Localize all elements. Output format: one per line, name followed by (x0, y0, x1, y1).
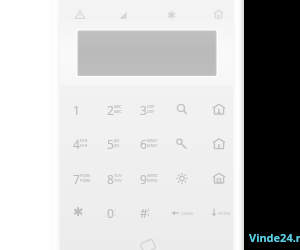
staticText: ABC (114, 104, 122, 109)
staticText: – (114, 207, 116, 212)
staticText: GHI (80, 138, 88, 143)
staticText: 1 (73, 102, 80, 118)
button[interactable]: 2 (101, 99, 129, 121)
staticText: TUV (114, 173, 122, 178)
staticText: ✱ (73, 205, 84, 219)
button[interactable]: 4 (67, 133, 95, 155)
button[interactable]: 6 (134, 133, 162, 155)
staticText: JKL (114, 143, 120, 148)
staticText: ENTER (218, 211, 231, 216)
staticText: ↓ (147, 212, 151, 217)
staticText: ABC (114, 109, 122, 114)
button[interactable]: 3 (134, 99, 162, 121)
staticText: PQRS (80, 178, 91, 183)
staticText: 8 (107, 171, 114, 187)
staticText: WXYZ (147, 178, 158, 183)
staticText: WXYZ (147, 173, 158, 178)
button[interactable]: 8 (101, 168, 129, 190)
button[interactable]: ✱ (67, 202, 95, 224)
staticText: 3 (140, 102, 147, 118)
staticText: 7 (73, 171, 80, 187)
staticText: MNO (147, 138, 157, 143)
staticText: 2 (107, 102, 114, 118)
staticText: 6 (140, 136, 147, 152)
staticText: 0 (107, 205, 114, 221)
staticText: ↓ (147, 207, 151, 212)
staticText: DEF (147, 109, 155, 114)
staticText: Vinde24.ro (249, 230, 300, 245)
staticText: 9 (140, 171, 147, 187)
staticText: 5 (107, 136, 114, 152)
staticText: GHI (80, 143, 88, 148)
staticText: JKL (114, 138, 120, 143)
staticText: PQRS (80, 173, 91, 178)
staticText: MNO (147, 143, 157, 148)
staticText: ↑ (80, 207, 84, 212)
staticText: CLEAR (181, 211, 193, 216)
staticText: TUV (114, 178, 122, 183)
staticText: 4 (73, 136, 80, 152)
button[interactable]: 1 (67, 99, 95, 121)
staticText: DEF (147, 104, 155, 109)
button[interactable]: 7 (67, 168, 95, 190)
button[interactable]: 0 (101, 202, 129, 224)
button[interactable]: 9 (134, 168, 162, 190)
staticText: # (140, 205, 148, 221)
button[interactable]: # (134, 202, 162, 224)
staticText: ↑ (80, 212, 84, 217)
staticText: – (114, 212, 116, 217)
button[interactable]: 5 (101, 133, 129, 155)
